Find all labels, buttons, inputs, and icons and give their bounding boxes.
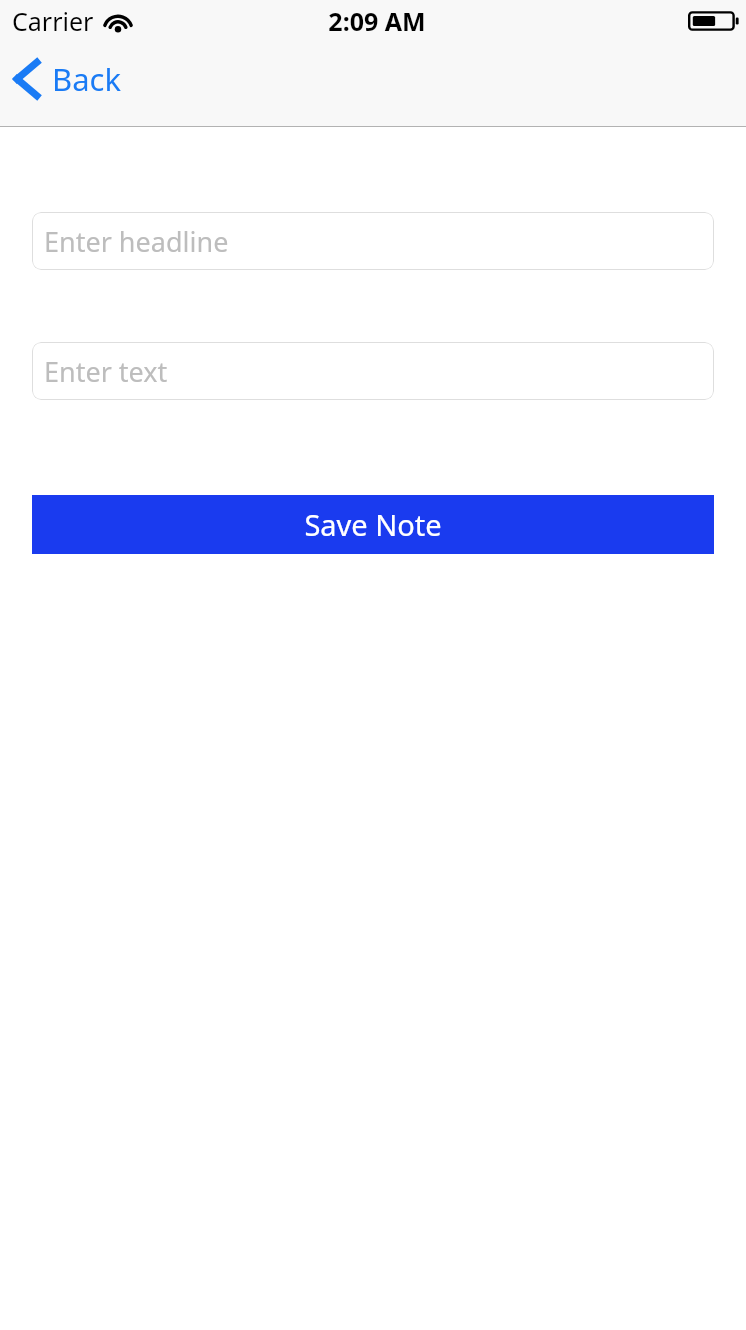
staticText: Enter headline [44, 223, 229, 260]
button[interactable]: Back [0, 50, 139, 108]
staticText: 2:09 AM [328, 4, 426, 38]
staticText: Back [52, 58, 121, 100]
button[interactable]: Enter text [32, 342, 714, 400]
staticText: Enter text [44, 353, 168, 390]
button[interactable]: Enter headline [32, 212, 714, 270]
button[interactable]: Save Note [32, 495, 714, 554]
other: Battery [688, 9, 740, 33]
other: Wi-Fi [104, 10, 132, 32]
staticText: Carrier [12, 4, 94, 38]
staticText: Save Note [304, 505, 442, 544]
other: Back [14, 60, 40, 98]
